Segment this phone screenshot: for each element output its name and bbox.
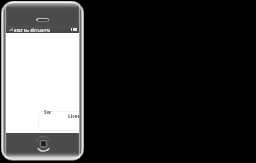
staticText: AT&T Mo 3G (14, 28, 35, 33)
staticText: 11:48 PM (35, 28, 50, 33)
staticText: Sw (44, 109, 51, 116)
button[interactable]: Home (36, 136, 53, 153)
button[interactable]: Licenses (38, 111, 79, 131)
staticText: Licenses (68, 113, 79, 120)
